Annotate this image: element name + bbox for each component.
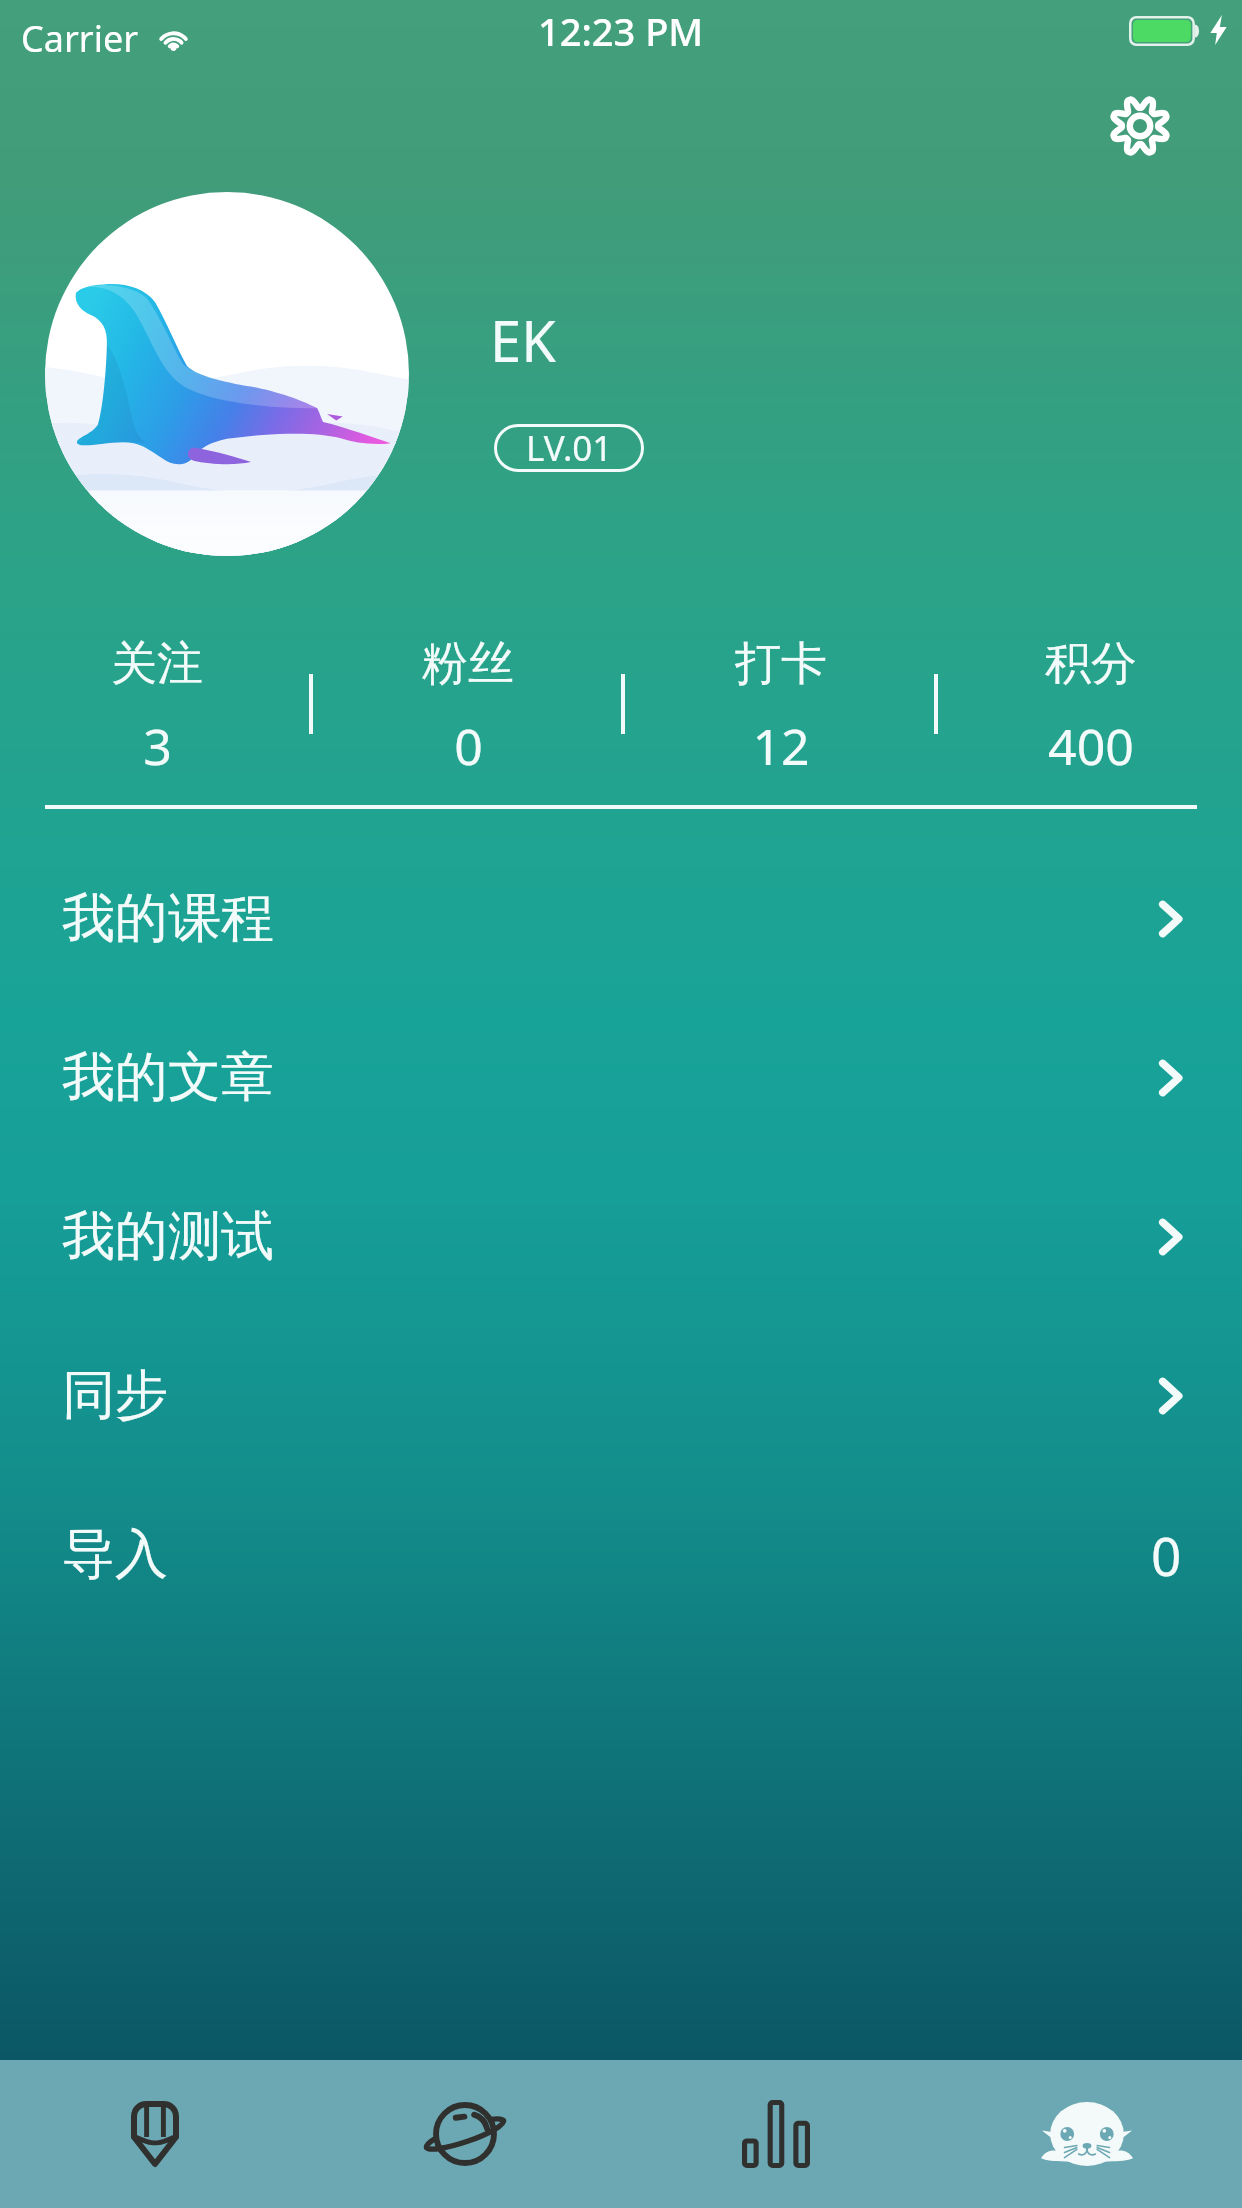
button[interactable]: 导入 [0, 1475, 1242, 1634]
staticText: 12 [752, 712, 810, 780]
staticText: LV.01 [526, 424, 613, 472]
button[interactable]: 打卡 [671, 635, 891, 790]
staticText: 同步 [62, 1362, 168, 1429]
staticText: 关注 [111, 635, 203, 693]
button[interactable]: LV.01 [494, 424, 644, 472]
button[interactable]: 我的课程 [0, 839, 1242, 998]
button[interactable]: 积分 [981, 635, 1201, 790]
staticText: 粉丝 [422, 635, 514, 693]
staticText: Carrier [21, 14, 139, 63]
staticText: 0 [454, 712, 483, 780]
button[interactable]: Avatar [45, 192, 409, 556]
button[interactable]: 关注 [47, 635, 267, 790]
staticText: EK [490, 302, 556, 378]
staticText: 0 [1151, 1519, 1182, 1591]
button[interactable]: 我的文章 [0, 998, 1242, 1157]
staticText: 我的课程 [62, 885, 274, 952]
staticText: 3 [143, 712, 172, 780]
button[interactable]: 粉丝 [358, 635, 578, 790]
staticText: 打卡 [735, 635, 827, 693]
staticText: 12:23 PM [538, 5, 704, 57]
button[interactable]: Profile [931, 2060, 1242, 2208]
button[interactable]: Notes [0, 2060, 310, 2208]
staticText: 我的文章 [62, 1044, 274, 1111]
button[interactable]: Explore [310, 2060, 620, 2208]
button[interactable]: Statistics [620, 2060, 931, 2208]
staticText: 积分 [1045, 635, 1137, 693]
button[interactable]: Settings [1096, 82, 1184, 170]
button[interactable]: 我的测试 [0, 1157, 1242, 1316]
staticText: 导入 [62, 1521, 168, 1588]
staticText: 我的测试 [62, 1203, 274, 1270]
button[interactable]: 同步 [0, 1316, 1242, 1475]
staticText: 400 [1048, 712, 1134, 780]
